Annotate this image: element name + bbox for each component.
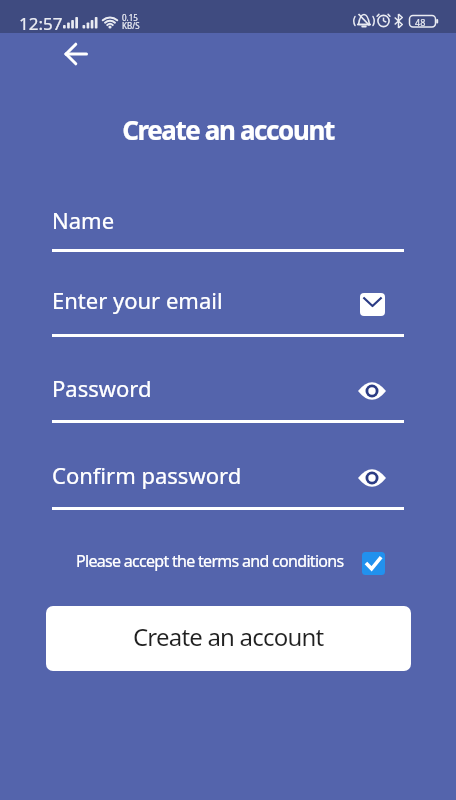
staticText: 48 bbox=[415, 16, 426, 28]
staticText: Create an account bbox=[133, 620, 324, 653]
staticText: Please accept the terms and conditions bbox=[76, 550, 344, 572]
staticText: KB/S bbox=[122, 20, 140, 31]
staticText: Create an account bbox=[0, 112, 456, 147]
staticText: Confirm password bbox=[52, 460, 242, 490]
button[interactable] bbox=[360, 293, 386, 316]
staticText: Password bbox=[52, 373, 152, 403]
staticText: Enter your email bbox=[52, 285, 223, 315]
staticText: 12:57 bbox=[19, 12, 63, 35]
button[interactable] bbox=[357, 380, 387, 402]
button[interactable]: Create an account bbox=[46, 606, 411, 671]
button[interactable] bbox=[56, 34, 96, 74]
button[interactable] bbox=[357, 467, 387, 489]
button[interactable] bbox=[362, 552, 385, 575]
staticText: 0.15 bbox=[122, 12, 138, 23]
staticText: Name bbox=[52, 205, 115, 235]
